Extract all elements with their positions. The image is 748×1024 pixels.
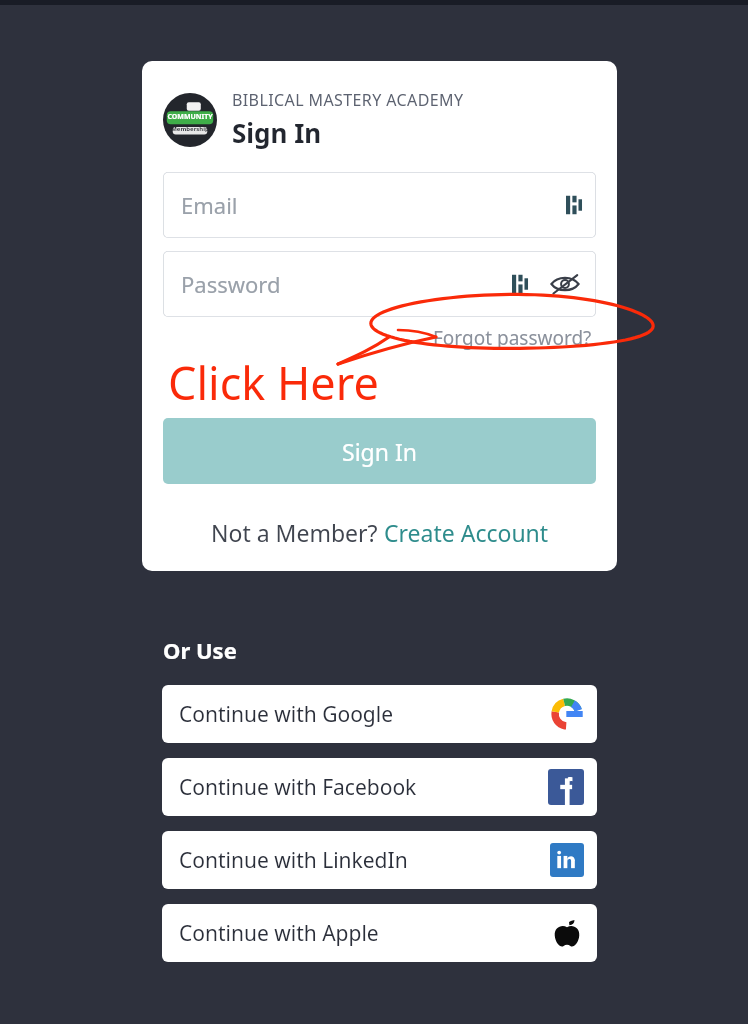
staticText: Continue with Google (179, 700, 394, 729)
staticText: Continue with Apple (179, 919, 379, 948)
button[interactable]: Create Account (384, 517, 549, 548)
staticText: Sign In (342, 436, 417, 467)
staticText: Create Account (384, 517, 549, 548)
button[interactable]: Sign In (163, 418, 596, 484)
button[interactable]: Continue with Apple (162, 904, 597, 962)
staticText: Email (181, 190, 238, 220)
button[interactable]: Password (163, 251, 596, 317)
staticText: Not a Member? (211, 517, 384, 548)
button[interactable]: Continue with LinkedIn (162, 831, 597, 889)
staticText: Password (181, 269, 281, 299)
staticText: Continue with LinkedIn (179, 846, 408, 875)
button[interactable]: Email (163, 172, 596, 238)
staticText: Click Here (168, 352, 379, 413)
button[interactable]: Forgot password? (429, 317, 596, 359)
staticText: COMMUNITY (167, 112, 213, 122)
staticText: Continue with Facebook (179, 773, 417, 802)
staticText: Forgot password? (433, 325, 592, 351)
button[interactable]: Show password (548, 267, 582, 301)
button[interactable]: Continue with Facebook (162, 758, 597, 816)
button[interactable]: Continue with Google (162, 685, 597, 743)
staticText: BIBLICAL MASTERY ACADEMY (232, 89, 464, 111)
staticText: Sign In (232, 115, 322, 150)
staticText: Membership (171, 125, 209, 133)
staticText: Or Use (163, 635, 237, 665)
